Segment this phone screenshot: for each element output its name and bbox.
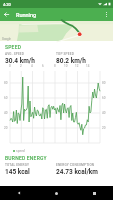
staticText: 60 (102, 96, 106, 100)
staticText: 12 (75, 64, 79, 68)
button[interactable]: Back (0, 186, 37, 200)
staticText: 20 (4, 126, 8, 130)
button[interactable]: Recents (75, 186, 113, 200)
staticText: 6 (42, 64, 44, 68)
staticText: 8 (54, 64, 56, 68)
staticText: 80.2 km/h (56, 57, 86, 65)
staticText: 10 (64, 64, 68, 68)
staticText: ENERGY CONSUMPTION (56, 163, 95, 167)
button[interactable]: Home (37, 186, 75, 200)
button[interactable]: More options (100, 8, 113, 21)
staticText: 80 (4, 81, 8, 85)
staticText: SPEED (5, 44, 22, 50)
staticText: TOTAL ENERGY (5, 163, 30, 167)
button[interactable]: Back (0, 8, 13, 21)
staticText: BURNED ENERGY (5, 155, 47, 161)
staticText: 24.73 kcal/km (56, 168, 98, 176)
staticText: 40 (4, 111, 8, 115)
staticText: 4 (31, 64, 33, 68)
staticText: 4:20 (3, 2, 11, 7)
staticText: 80 (102, 81, 106, 85)
staticText: 20 (102, 126, 106, 130)
staticText: AVG. SPEED (5, 52, 25, 56)
staticText: Running (16, 12, 37, 18)
staticText: 40 (102, 111, 106, 115)
staticText: Google (2, 37, 11, 40)
staticText: TOP SPEED (56, 52, 74, 56)
staticText: 30.4 km/h (5, 57, 35, 65)
staticText: 145 kcal (5, 168, 30, 176)
staticText: 60 (4, 96, 8, 100)
staticText: 2 (20, 64, 22, 68)
staticText: 0 (9, 64, 11, 68)
staticText: 14 (86, 64, 90, 68)
staticText: speed (16, 149, 25, 153)
